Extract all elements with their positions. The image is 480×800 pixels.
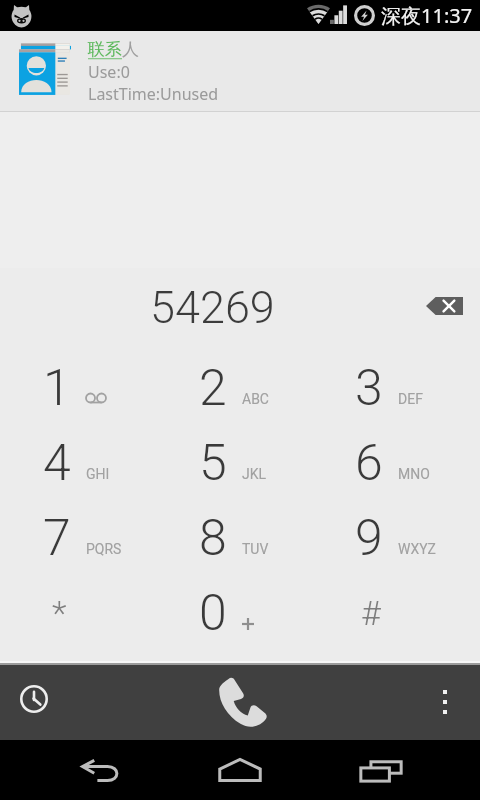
button[interactable]: 4 bbox=[0, 423, 160, 498]
staticText: 6 bbox=[355, 434, 383, 493]
button[interactable]: 8 bbox=[160, 498, 320, 573]
staticText: 54269 bbox=[150, 281, 275, 334]
button[interactable]: 3 bbox=[320, 348, 480, 423]
button[interactable]: 1 bbox=[0, 348, 160, 423]
staticText: 2 bbox=[199, 359, 227, 418]
button[interactable]: Call history bbox=[10, 675, 58, 723]
staticText: 0 bbox=[199, 584, 227, 643]
button[interactable]: Delete bbox=[412, 280, 478, 332]
staticText: GHI bbox=[86, 466, 110, 482]
button[interactable]: # bbox=[320, 573, 480, 648]
button[interactable]: 0 bbox=[160, 573, 320, 648]
button[interactable]: 联系 bbox=[0, 31, 480, 111]
staticText: LastTime:Unused bbox=[88, 83, 219, 105]
staticText: JKL bbox=[242, 466, 267, 482]
button[interactable]: 7 bbox=[0, 498, 160, 573]
staticText: # bbox=[361, 593, 381, 633]
staticText: 7 bbox=[43, 509, 71, 568]
staticText: Use:0 bbox=[88, 61, 130, 83]
staticText: 9 bbox=[355, 509, 383, 568]
button[interactable]: 9 bbox=[320, 498, 480, 573]
staticText: 8 bbox=[199, 509, 227, 568]
button[interactable]: 5 bbox=[160, 423, 320, 498]
staticText: TUV bbox=[242, 541, 269, 557]
staticText: 人 bbox=[122, 39, 139, 60]
staticText: DEF bbox=[398, 391, 423, 407]
staticText: PQRS bbox=[86, 541, 122, 557]
button[interactable]: Recent apps bbox=[341, 740, 421, 800]
staticText: WXYZ bbox=[398, 541, 436, 557]
button[interactable]: 2 bbox=[160, 348, 320, 423]
button[interactable]: Back bbox=[60, 740, 140, 800]
staticText: 3 bbox=[355, 359, 383, 418]
staticText: ABC bbox=[242, 391, 269, 407]
staticText: 1 bbox=[43, 359, 71, 418]
staticText: 联系 bbox=[88, 39, 122, 60]
staticText: 深夜11:37 bbox=[381, 2, 473, 29]
button[interactable]: * bbox=[0, 573, 160, 648]
button[interactable]: More options bbox=[421, 678, 469, 726]
staticText: 4 bbox=[43, 434, 71, 493]
staticText: * bbox=[52, 593, 67, 633]
button[interactable]: 6 bbox=[320, 423, 480, 498]
staticText: 5 bbox=[199, 434, 227, 493]
button[interactable]: Home bbox=[200, 740, 280, 800]
staticText: MNO bbox=[398, 466, 430, 482]
